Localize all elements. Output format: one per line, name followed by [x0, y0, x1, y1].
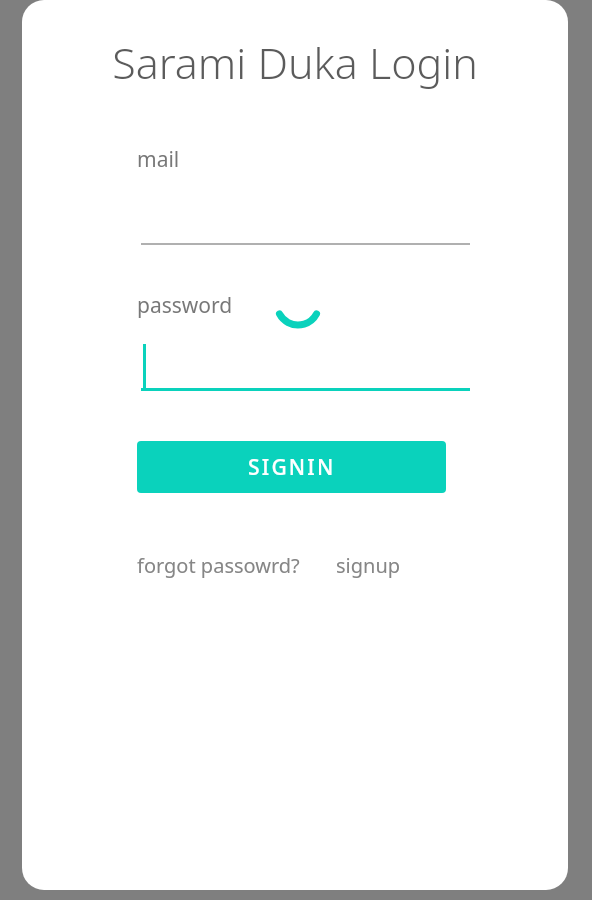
other: Loading — [275, 283, 321, 329]
button[interactable]: signup — [336, 548, 401, 582]
staticText: forgot passowrd? — [137, 552, 300, 578]
button[interactable]: password input field — [141, 340, 470, 391]
button[interactable]: mail input field — [141, 180, 470, 245]
staticText: password — [137, 291, 233, 320]
staticText: mail — [137, 145, 180, 174]
button[interactable]: forgot passowrd? — [137, 548, 300, 582]
staticText: signup — [336, 552, 401, 578]
button[interactable]: SIGNIN — [137, 441, 446, 493]
staticText: SIGNIN — [248, 453, 336, 482]
staticText: Sarami Duka Login — [22, 33, 568, 92]
